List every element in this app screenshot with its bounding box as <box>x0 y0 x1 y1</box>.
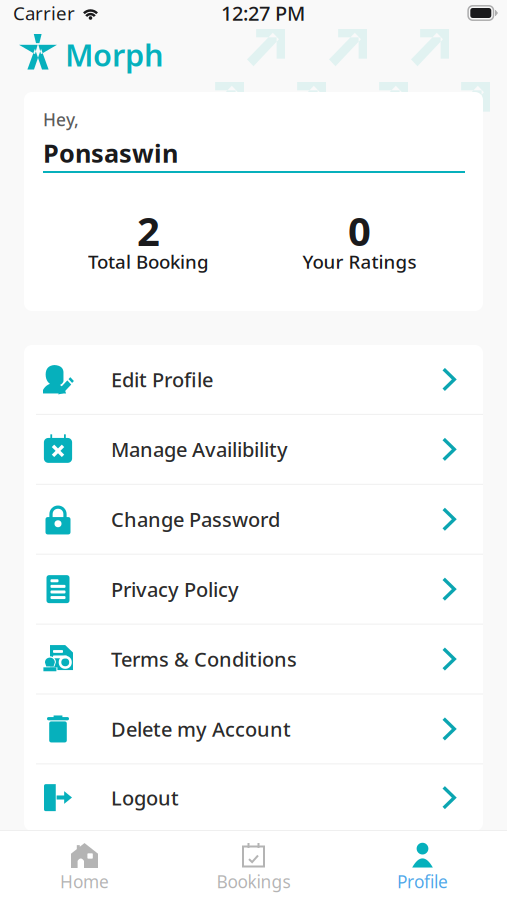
staticText: Hey, <box>43 108 79 131</box>
staticText: Logout <box>111 784 179 811</box>
staticText: Morph <box>65 34 164 75</box>
button[interactable]: Edit Profile <box>24 345 483 415</box>
button[interactable]: Delete my Account <box>24 694 483 764</box>
button[interactable]: Profile <box>338 830 507 900</box>
staticText: 2 <box>137 204 160 257</box>
staticText: Home <box>60 870 109 893</box>
staticText: 12:27 PM <box>221 0 305 26</box>
staticText: Edit Profile <box>111 366 213 393</box>
staticText: Change Password <box>111 506 280 533</box>
button[interactable]: Change Password <box>24 485 483 555</box>
staticText: Carrier <box>13 1 75 25</box>
staticText: 0 <box>348 204 371 257</box>
staticText: Delete my Account <box>111 716 291 742</box>
button[interactable]: Home <box>0 830 169 900</box>
button[interactable]: Manage Availibility <box>24 415 483 485</box>
button[interactable]: Logout <box>24 764 483 831</box>
button[interactable]: Terms & Conditions <box>24 625 483 694</box>
staticText: Terms & Conditions <box>111 646 297 672</box>
staticText: Ponsaswin <box>43 136 178 170</box>
staticText: Manage Availibility <box>111 436 288 463</box>
staticText: Bookings <box>216 870 290 893</box>
staticText: Profile <box>397 870 448 893</box>
button[interactable]: Privacy Policy <box>24 555 483 625</box>
button[interactable]: Bookings <box>169 830 338 900</box>
staticText: Privacy Policy <box>111 576 239 602</box>
staticText: Total Booking <box>88 249 209 274</box>
staticText: Your Ratings <box>302 249 416 274</box>
